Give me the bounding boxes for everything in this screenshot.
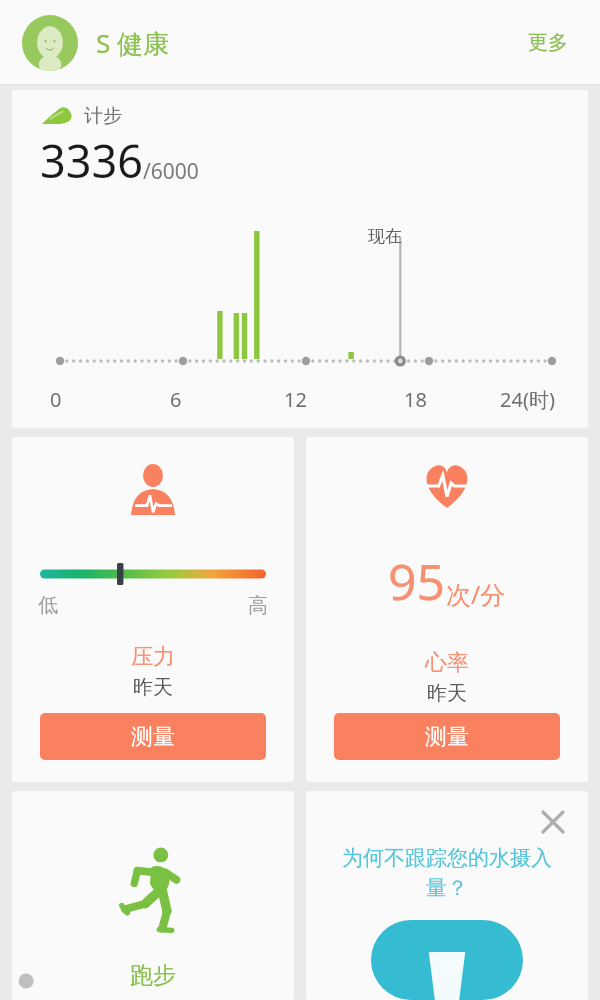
button[interactable]: Profile	[22, 15, 78, 71]
staticText: 18	[404, 386, 427, 413]
staticText: 测量	[425, 723, 469, 751]
staticText: 95	[388, 547, 446, 615]
staticText: 为何不跟踪您的水摄入量？	[324, 845, 570, 902]
staticText: 次/分	[446, 577, 506, 611]
staticText: /6000	[143, 157, 199, 186]
staticText: 昨天	[133, 675, 173, 700]
staticText: 计步	[84, 104, 122, 128]
button[interactable]: Close	[306, 791, 588, 1000]
staticText: 高	[248, 593, 268, 618]
button[interactable]: 低	[12, 437, 294, 782]
staticText: 心率	[425, 649, 469, 677]
button[interactable]: 95	[306, 437, 588, 782]
staticText: 跑步	[130, 961, 176, 990]
button[interactable]: Close	[534, 803, 572, 841]
button[interactable]: 测量	[40, 713, 266, 760]
button[interactable]: 跑步	[12, 791, 294, 1000]
button[interactable]: 更多	[520, 22, 576, 63]
button[interactable]: 测量	[334, 713, 560, 760]
staticText: 现在	[368, 226, 402, 247]
staticText: 压力	[131, 643, 175, 671]
staticText: 昨天	[427, 681, 467, 706]
staticText: S 健康	[96, 25, 170, 61]
staticText: 低	[38, 593, 58, 618]
staticText: 24(时)	[500, 386, 555, 413]
staticText: 12	[284, 386, 307, 413]
staticText: 0	[50, 386, 62, 413]
staticText: 3336	[40, 130, 143, 191]
staticText: 更多	[528, 30, 568, 55]
staticText: 6	[170, 386, 182, 413]
staticText: 测量	[131, 723, 175, 751]
button[interactable]: 计步	[12, 90, 588, 428]
